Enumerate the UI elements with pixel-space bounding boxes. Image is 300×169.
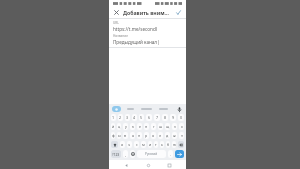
button[interactable]: ф (111, 132, 115, 139)
button[interactable]: в (123, 132, 128, 139)
button[interactable]: Voice input (175, 105, 183, 113)
button[interactable]: Название (113, 34, 182, 45)
button[interactable]: м (141, 141, 146, 148)
button[interactable]: у (123, 123, 128, 130)
button[interactable]: р (144, 132, 149, 139)
button[interactable]: т (154, 141, 158, 148)
staticText: м (142, 142, 145, 147)
staticText: р (145, 133, 148, 138)
button[interactable]: е (137, 123, 142, 130)
staticText: 8 (164, 115, 167, 120)
staticText: . (170, 152, 172, 157)
button[interactable]: 6 (146, 114, 152, 121)
button[interactable]: я (120, 141, 125, 148)
button[interactable]: URL (113, 21, 182, 32)
staticText: я (121, 142, 124, 147)
button[interactable]: б (166, 141, 170, 148)
button[interactable]: п (137, 132, 142, 139)
staticText: у (125, 124, 127, 129)
button[interactable]: ?123 (111, 150, 121, 158)
button[interactable] (141, 108, 152, 110)
staticText: 2 (119, 115, 122, 120)
button[interactable]: 0 (178, 114, 184, 121)
button[interactable]: ч (127, 141, 132, 148)
button[interactable]: а (130, 132, 135, 139)
button[interactable]: ж (172, 132, 177, 139)
button[interactable]: Русский (137, 150, 166, 158)
staticText: 1 (112, 115, 115, 120)
button[interactable]: , (123, 150, 128, 158)
staticText: ш (159, 124, 163, 129)
staticText: ф (112, 133, 115, 138)
button[interactable]: Home (144, 161, 152, 169)
button[interactable]: 9 (170, 114, 176, 121)
button[interactable]: 8 (162, 114, 168, 121)
staticText: к (132, 124, 134, 129)
staticText: URL (113, 21, 119, 25)
staticText: Русский (145, 152, 158, 156)
button[interactable]: Back (122, 161, 130, 169)
button[interactable]: э (179, 132, 184, 139)
staticText: е (139, 124, 141, 129)
button[interactable]: с (134, 141, 139, 148)
button[interactable]: Emoji (130, 150, 135, 158)
button[interactable]: д (165, 132, 170, 139)
button[interactable]: х (179, 123, 184, 130)
staticText: ь (161, 142, 163, 147)
staticText: ы (118, 133, 121, 138)
staticText: ю (173, 142, 176, 147)
button[interactable]: Recents (165, 161, 173, 169)
button[interactable]: н (144, 123, 149, 130)
button[interactable]: 5 (139, 114, 144, 121)
button[interactable]: Enter (175, 150, 184, 158)
button[interactable]: ш (158, 123, 163, 130)
staticText: д (166, 133, 169, 138)
staticText: с (136, 142, 138, 147)
staticText: н (145, 124, 148, 129)
button[interactable]: 4 (132, 114, 137, 121)
staticText: 5 (140, 115, 143, 120)
button[interactable]: о (151, 132, 156, 139)
button[interactable]: ц (117, 123, 121, 130)
button[interactable]: 2 (118, 114, 123, 121)
staticText: ж (173, 133, 176, 138)
staticText: 4 (133, 115, 136, 120)
staticText: а (132, 133, 134, 138)
button[interactable]: г (151, 123, 156, 130)
staticText: б (167, 142, 170, 147)
staticText: Добавить внимание с… (123, 9, 172, 16)
button[interactable]: щ (165, 123, 170, 130)
staticText: 0 (180, 115, 183, 120)
button[interactable] (159, 108, 168, 110)
button[interactable]: Save (174, 8, 183, 17)
button[interactable]: й (111, 123, 115, 130)
staticText: Предыдущий канал| (113, 39, 160, 45)
staticText: 9 (172, 115, 175, 120)
staticText: https://t.me/secondl (113, 26, 157, 32)
button[interactable]: . (168, 150, 173, 158)
staticText: , (125, 152, 127, 157)
staticText: з (174, 124, 176, 129)
button[interactable]: 3 (125, 114, 130, 121)
staticText: ц (118, 124, 121, 129)
button[interactable] (127, 108, 134, 110)
button[interactable]: Backspace (178, 141, 184, 148)
staticText: щ (166, 124, 170, 129)
button[interactable]: Close (112, 8, 121, 17)
button[interactable]: и (148, 141, 152, 148)
staticText: г (153, 124, 155, 129)
button[interactable]: ю (172, 141, 176, 148)
button[interactable]: 7 (154, 114, 160, 121)
button[interactable] (112, 106, 121, 112)
staticText: п (138, 133, 141, 138)
button[interactable]: з (172, 123, 177, 130)
button[interactable]: Shift (111, 141, 118, 148)
staticText: о (152, 133, 155, 138)
button[interactable]: ь (160, 141, 164, 148)
button[interactable]: ы (117, 132, 121, 139)
button[interactable]: л (158, 132, 163, 139)
button[interactable]: к (130, 123, 135, 130)
button[interactable]: 1 (111, 114, 116, 121)
staticText: ?123 (112, 152, 120, 157)
staticText: й (112, 124, 115, 129)
